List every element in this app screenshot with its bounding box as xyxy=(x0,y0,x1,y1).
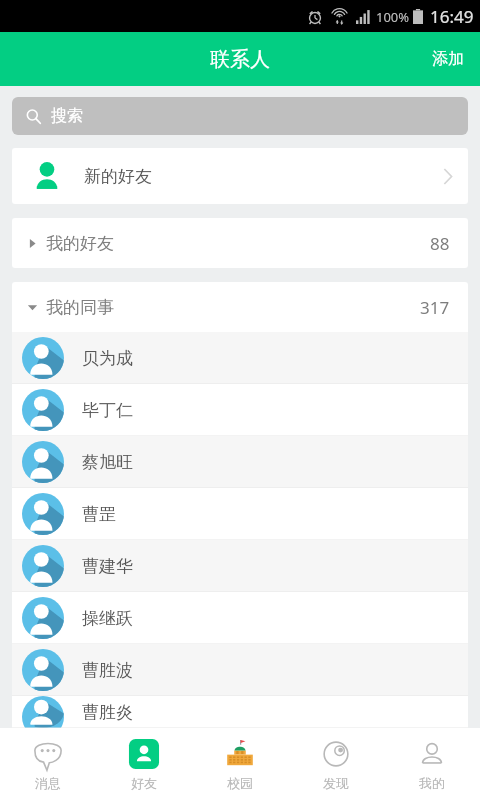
staticText: 317 xyxy=(420,296,450,319)
staticText: 88 xyxy=(430,232,450,255)
staticText: 我的好友 xyxy=(46,233,430,254)
staticText: 我的同事 xyxy=(46,297,420,318)
staticText: 蔡旭旺 xyxy=(82,452,133,473)
staticText: 曹建华 xyxy=(82,556,133,577)
button[interactable]: 消息 xyxy=(0,728,96,800)
staticText: 16:49 xyxy=(430,5,474,28)
button[interactable]: 好友 xyxy=(96,728,192,800)
staticText: 曹胜炎 xyxy=(82,702,133,723)
staticText: 发现 xyxy=(323,775,349,791)
button[interactable]: 曹胜炎 xyxy=(12,696,468,728)
staticText: 新的好友 xyxy=(84,166,443,187)
button[interactable]: 贝为成 xyxy=(12,332,468,384)
staticText: 联系人 xyxy=(210,47,270,72)
staticText: 消息 xyxy=(35,775,61,791)
button[interactable]: 曹胜波 xyxy=(12,644,468,696)
staticText: 曹胜波 xyxy=(82,660,133,681)
button[interactable]: 毕丁仁 xyxy=(12,384,468,436)
staticText: 操继跃 xyxy=(82,608,133,629)
staticText: 校园 xyxy=(227,775,253,791)
button[interactable]: 操继跃 xyxy=(12,592,468,644)
staticText: 毕丁仁 xyxy=(82,400,133,421)
button[interactable]: 添加 xyxy=(416,32,480,86)
button[interactable]: 搜索 xyxy=(12,97,468,135)
button[interactable]: 校园 xyxy=(192,728,288,800)
staticText: 好友 xyxy=(131,775,157,791)
staticText: 搜索 xyxy=(51,106,83,126)
staticText: 贝为成 xyxy=(82,348,133,369)
button[interactable]: 曹建华 xyxy=(12,540,468,592)
staticText: 曹罡 xyxy=(82,504,116,525)
button[interactable]: 曹罡 xyxy=(12,488,468,540)
button[interactable]: 蔡旭旺 xyxy=(12,436,468,488)
staticText: 100% xyxy=(376,8,410,26)
button[interactable]: 新的好友 xyxy=(12,148,468,204)
button[interactable]: 我的同事 xyxy=(12,282,468,332)
button[interactable]: 我的好友 xyxy=(12,218,468,268)
button[interactable]: 我的 xyxy=(384,728,480,800)
staticText: 添加 xyxy=(432,49,464,69)
button[interactable]: 发现 xyxy=(288,728,384,800)
staticText: 我的 xyxy=(419,775,445,791)
